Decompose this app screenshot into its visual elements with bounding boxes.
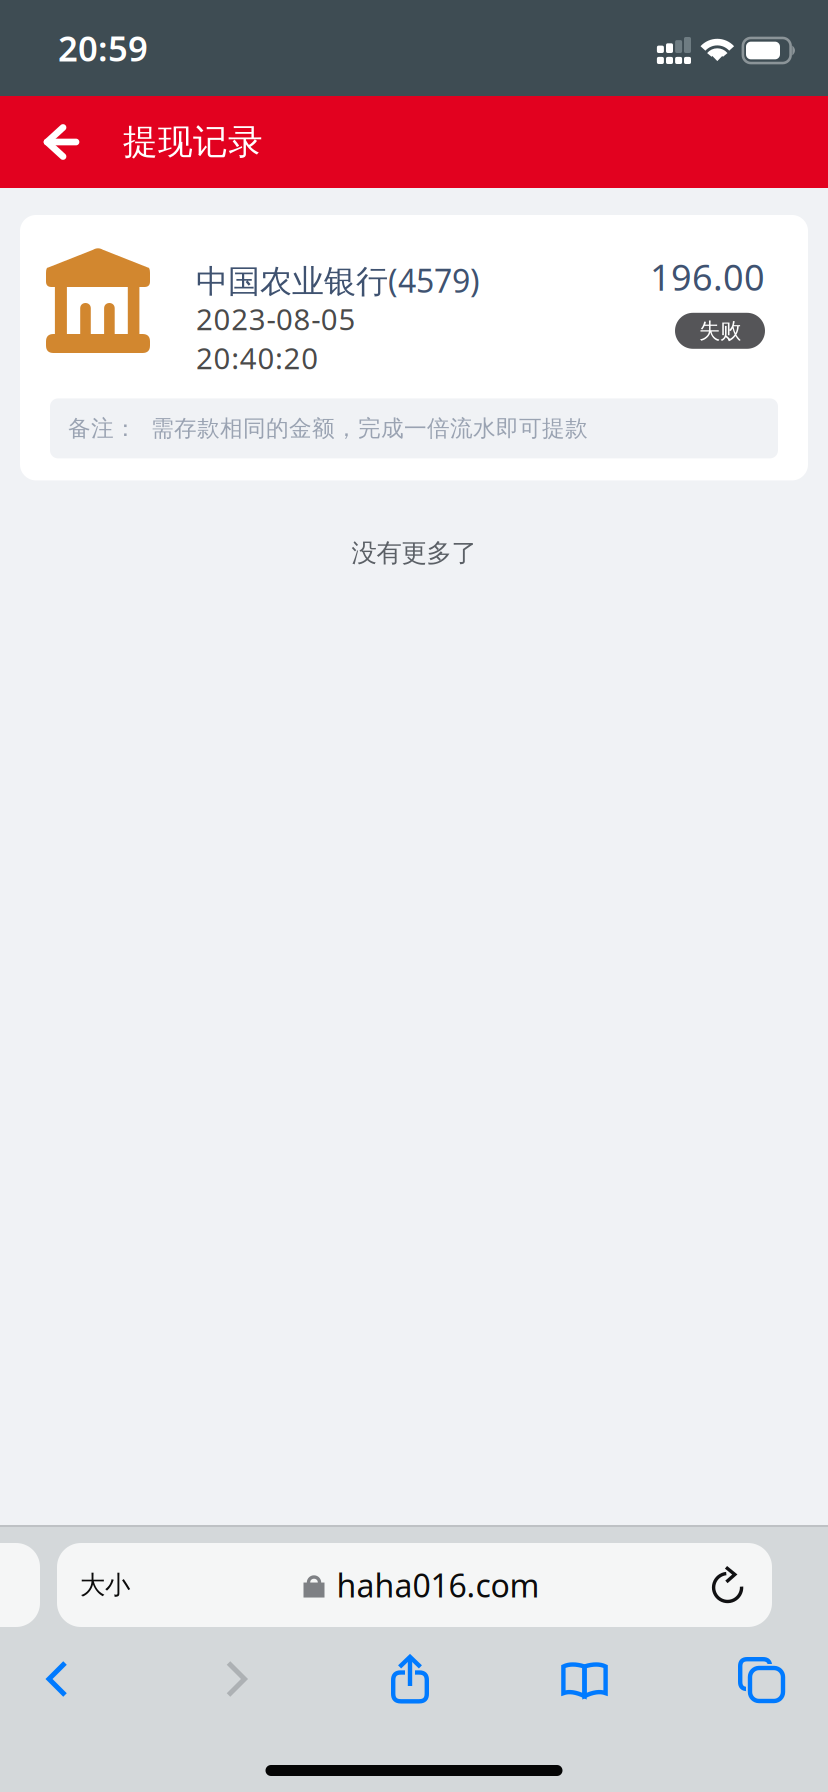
staticText: 196.00 <box>650 253 765 301</box>
staticText: 备注： 需存款相同的金额，完成一倍流水即可提款 <box>68 414 588 442</box>
button[interactable]: Tabs <box>708 1648 813 1710</box>
button[interactable]: Forward <box>114 1648 359 1710</box>
staticText: 2023-08-05 20:40:20 <box>196 299 355 377</box>
button[interactable]: Back <box>0 96 123 188</box>
button[interactable]: Back <box>0 1648 114 1710</box>
button[interactable]: Share <box>359 1648 461 1710</box>
staticText: 失败 <box>699 318 741 344</box>
staticText: 中国农业银行(4579) <box>196 259 480 301</box>
button[interactable]: Bookmarks <box>461 1648 708 1710</box>
button[interactable]: 大小 <box>57 1543 772 1627</box>
staticText: haha016.com <box>336 1564 539 1606</box>
staticText: 提现记录 <box>123 121 263 163</box>
staticText: 没有更多了 <box>351 537 476 568</box>
staticText: 大小 <box>80 1569 130 1600</box>
staticText: 20:59 <box>58 25 148 71</box>
